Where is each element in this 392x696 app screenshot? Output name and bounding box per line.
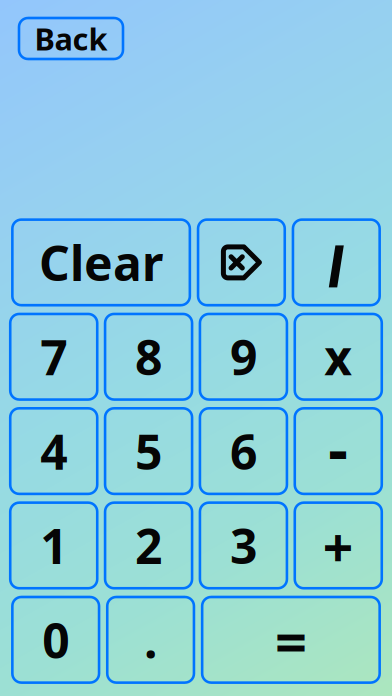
button[interactable]: - xyxy=(295,408,382,494)
button[interactable]: + xyxy=(295,503,382,588)
staticText: 1 xyxy=(40,514,67,577)
button[interactable]: 5 xyxy=(105,408,192,494)
staticText: 3 xyxy=(230,514,257,577)
button[interactable]: 6 xyxy=(200,408,287,494)
button[interactable]: Divide xyxy=(293,220,380,305)
staticText: 2 xyxy=(135,514,162,577)
button[interactable]: = xyxy=(202,597,380,683)
button[interactable]: . xyxy=(107,597,194,683)
button[interactable]: 7 xyxy=(10,314,97,400)
button[interactable]: 1 xyxy=(10,503,97,588)
staticText: 6 xyxy=(230,419,257,483)
staticText: + xyxy=(323,511,354,582)
staticText: 9 xyxy=(230,325,257,389)
staticText: 4 xyxy=(40,419,67,483)
button[interactable]: 3 xyxy=(200,503,287,588)
button[interactable]: 0 xyxy=(12,597,99,683)
button[interactable]: 2 xyxy=(105,503,192,588)
staticText: - xyxy=(328,407,348,489)
button[interactable]: Delete xyxy=(198,220,285,305)
button[interactable]: 9 xyxy=(200,314,287,400)
button[interactable]: 8 xyxy=(105,314,192,400)
button[interactable]: Clear xyxy=(12,220,190,305)
staticText: x xyxy=(324,325,352,389)
button[interactable]: Back xyxy=(19,18,123,59)
button[interactable]: x xyxy=(295,314,382,400)
staticText: Clear xyxy=(39,230,163,294)
staticText: 5 xyxy=(135,419,162,483)
staticText: 7 xyxy=(40,325,67,389)
staticText: . xyxy=(144,608,157,672)
staticText: = xyxy=(275,604,307,678)
button[interactable]: 4 xyxy=(10,408,97,494)
staticText: 8 xyxy=(135,325,162,389)
staticText: 0 xyxy=(42,608,69,672)
staticText: Back xyxy=(34,18,107,59)
